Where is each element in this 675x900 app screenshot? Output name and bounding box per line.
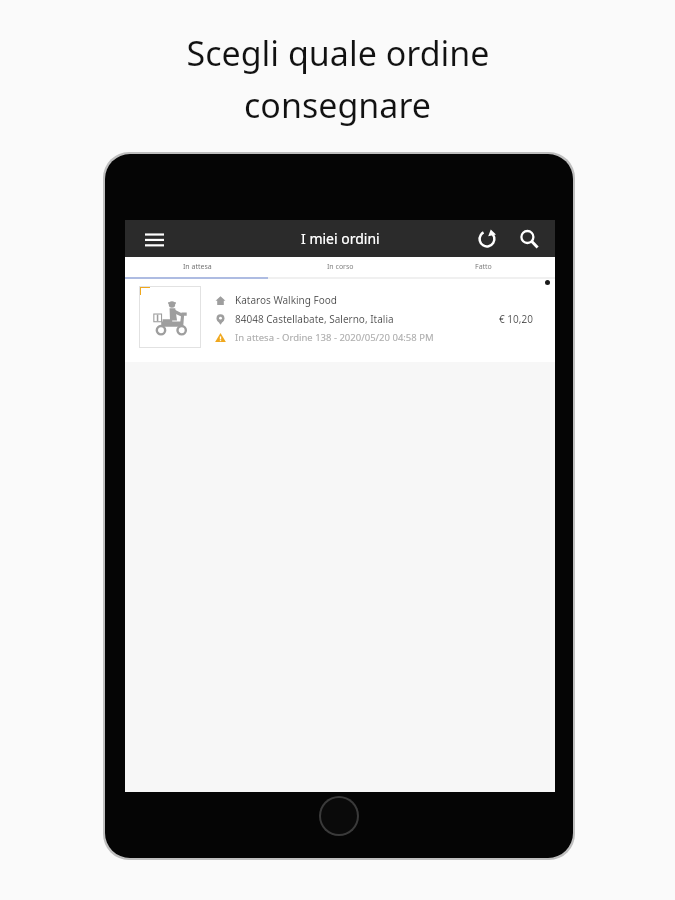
staticText: In attesa — [183, 262, 212, 272]
button[interactable]: Home — [321, 798, 357, 834]
button[interactable]: In attesa — [125, 257, 269, 277]
staticText: In attesa - Ordine 138 - 2020/05/20 04:5… — [235, 331, 434, 344]
staticText: consegnare — [244, 82, 431, 128]
staticText: In corso — [327, 262, 354, 272]
staticText: Kataros Walking Food — [235, 293, 337, 307]
button[interactable]: Menu — [137, 222, 171, 256]
staticText: Fatto — [475, 262, 492, 272]
staticText: I miei ordini — [301, 229, 380, 248]
button[interactable]: Refresh — [469, 221, 505, 257]
staticText: € 10,20 — [499, 312, 533, 326]
button[interactable]: Search — [511, 221, 547, 257]
staticText: Scegli quale ordine — [186, 30, 490, 76]
button[interactable]: In corso — [269, 257, 412, 277]
staticText: 84048 Castellabate, Salerno, Italia — [235, 312, 394, 326]
button[interactable]: Fatto — [412, 257, 555, 277]
button[interactable]: Kataros Walking Food — [125, 279, 555, 362]
